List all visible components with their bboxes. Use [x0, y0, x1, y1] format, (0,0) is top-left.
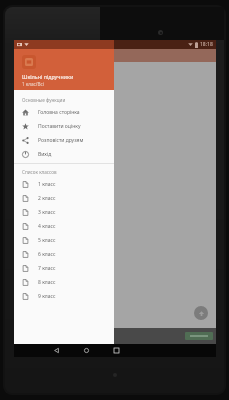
staticText: на 4 клас підручники 9 М — [20, 97, 75, 103]
staticText: 1 класс — [38, 181, 56, 188]
button[interactable]: 7 класс — [14, 261, 114, 275]
button[interactable]: Scroll to top — [194, 306, 208, 320]
staticText: 2 класс — [38, 195, 56, 202]
staticText: Шкільні підручники — [22, 73, 74, 80]
button[interactable]: 9 класс — [14, 289, 114, 303]
staticText: 3 класс — [38, 209, 56, 216]
staticText: Розповісти друзям — [38, 137, 84, 144]
staticText: я 4 кл. ГЕО. — [20, 191, 45, 197]
button[interactable]: Back — [48, 344, 64, 357]
staticText: 4 класс — [38, 223, 56, 230]
staticText: Гусев, 1 кл. Завдання — [20, 65, 67, 71]
button[interactable]: 4 класс — [14, 219, 114, 233]
button[interactable]: Розповісти друзям — [14, 133, 114, 147]
button[interactable]: 2 класс — [14, 191, 114, 205]
button[interactable]: Advertisement — [14, 328, 216, 344]
staticText: дном.ін. — [20, 157, 38, 163]
button[interactable]: Шкільні підручники — [14, 49, 114, 90]
staticText: Список классов — [22, 169, 57, 175]
staticText: 18:18 — [200, 41, 213, 48]
staticText: 1 клас/Всі — [22, 81, 44, 87]
staticText: 7 класс — [38, 265, 56, 272]
staticText: Вихід — [38, 151, 52, 158]
button[interactable]: Головна сторінка — [14, 105, 114, 119]
button[interactable]: Home — [78, 344, 94, 357]
button[interactable]: Recent apps — [108, 344, 124, 357]
button[interactable]: 1 класс — [14, 177, 114, 191]
staticText: Головна сторінка — [38, 109, 80, 116]
button[interactable]: 6 класс — [14, 247, 114, 261]
staticText: тдн„ЛЭД — [20, 209, 39, 215]
button[interactable]: 3 класс — [14, 205, 114, 219]
staticText: Основные функции — [22, 97, 66, 103]
staticText: 8 класс — [38, 279, 56, 286]
button[interactable]: 8 класс — [14, 275, 114, 289]
staticText: 9 класс — [38, 293, 56, 300]
staticText: 5 класс — [38, 237, 56, 244]
staticText: Поставити оцінку — [38, 123, 81, 130]
button[interactable]: Вихід — [14, 147, 114, 161]
button[interactable]: Close navigation drawer — [114, 49, 216, 344]
button[interactable]: Поставити оцінку — [14, 119, 114, 133]
staticText: 6 класс — [38, 251, 56, 258]
button[interactable]: 5 класс — [14, 233, 114, 247]
